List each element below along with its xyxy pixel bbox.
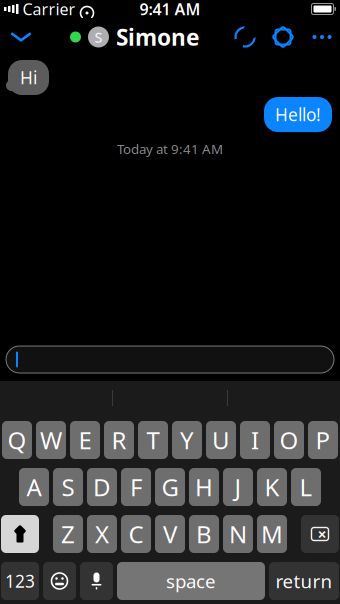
staticText: 123 — [5, 569, 35, 592]
button[interactable]: W — [36, 421, 66, 459]
button[interactable]: Emoji — [43, 562, 76, 600]
staticText: return — [275, 569, 332, 593]
button[interactable]: Y — [172, 421, 202, 459]
staticText: A — [26, 471, 41, 503]
staticText: Hello! — [275, 103, 321, 126]
staticText: R — [111, 424, 126, 456]
button[interactable]: H — [189, 468, 219, 506]
staticText: D — [93, 471, 111, 503]
staticText: L — [299, 471, 312, 503]
staticText: Simone — [116, 22, 200, 52]
staticText: P — [315, 424, 330, 456]
staticText: space — [166, 569, 216, 593]
button[interactable]: return — [269, 562, 339, 600]
staticText: F — [130, 471, 142, 503]
staticText: Y — [180, 424, 194, 456]
staticText: C — [128, 518, 143, 550]
button[interactable]: J — [223, 468, 253, 506]
button[interactable]: G — [155, 468, 185, 506]
button[interactable]: Q — [2, 421, 32, 459]
staticText: W — [40, 424, 62, 456]
button[interactable]: V — [155, 515, 185, 553]
staticText: M — [261, 518, 283, 550]
button[interactable]: Collapse — [0, 18, 44, 56]
button[interactable]: D — [87, 468, 117, 506]
button[interactable]: Favorite — [264, 18, 302, 56]
staticText: Z — [61, 518, 75, 550]
staticText: T — [146, 424, 159, 456]
button[interactable]: A — [19, 468, 49, 506]
button[interactable]: Z — [53, 515, 83, 553]
staticText: Carrier — [22, 0, 75, 20]
button[interactable]: I — [240, 421, 270, 459]
button[interactable]: N — [223, 515, 253, 553]
staticText: K — [264, 471, 279, 503]
button[interactable]: L — [291, 468, 321, 506]
button[interactable]: F — [121, 468, 151, 506]
staticText: B — [196, 518, 212, 550]
button[interactable]: Dictation — [80, 562, 113, 600]
button[interactable]: B — [189, 515, 219, 553]
button[interactable]: Call — [226, 18, 264, 56]
staticText: S — [61, 471, 74, 503]
button[interactable]: T — [138, 421, 168, 459]
button[interactable]: U — [206, 421, 236, 459]
staticText: S — [94, 27, 102, 47]
button[interactable]: K — [257, 468, 287, 506]
button[interactable]: Delete — [301, 515, 339, 553]
button[interactable]: Message field — [6, 346, 334, 373]
staticText: N — [229, 518, 247, 550]
staticText: Today at 9:41 AM — [117, 140, 223, 158]
button[interactable]: E — [70, 421, 100, 459]
staticText: G — [161, 471, 178, 503]
staticText: O — [279, 424, 298, 456]
button[interactable]: C — [121, 515, 151, 553]
button[interactable]: Shift — [1, 515, 39, 553]
staticText: X — [95, 518, 109, 550]
button[interactable]: space — [117, 562, 265, 600]
button[interactable]: O — [274, 421, 304, 459]
staticText: I — [251, 424, 259, 456]
button[interactable]: P — [308, 421, 338, 459]
staticText: V — [163, 518, 177, 550]
staticText: E — [78, 424, 91, 456]
staticText: Hi — [20, 66, 37, 89]
button[interactable]: M — [257, 515, 287, 553]
staticText: U — [212, 424, 230, 456]
button[interactable]: R — [104, 421, 134, 459]
staticText: H — [195, 471, 213, 503]
staticText: Q — [7, 424, 26, 456]
staticText: × — [317, 523, 326, 545]
button[interactable]: Numbers — [1, 562, 39, 600]
button[interactable]: S — [53, 468, 83, 506]
button[interactable]: More — [302, 18, 340, 56]
button[interactable]: X — [87, 515, 117, 553]
staticText: 9:41 AM — [139, 0, 200, 20]
staticText: J — [234, 471, 241, 503]
